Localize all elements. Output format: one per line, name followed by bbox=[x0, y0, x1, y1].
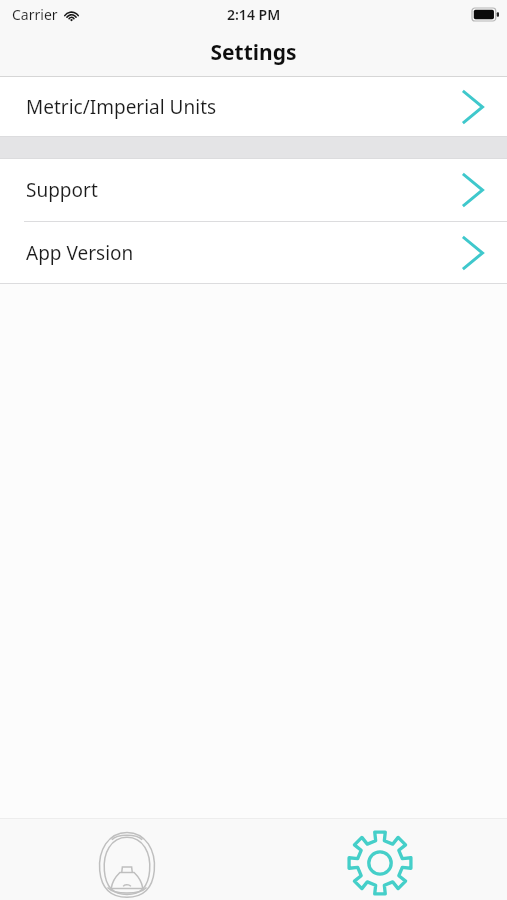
staticText: Carrier bbox=[12, 5, 58, 24]
button[interactable]: App Version bbox=[0, 222, 507, 283]
button[interactable]: Metric/Imperial Units bbox=[0, 77, 507, 136]
button[interactable]: Support bbox=[0, 159, 507, 221]
staticText: Support bbox=[26, 177, 98, 203]
button[interactable]: Settings bbox=[253, 819, 507, 900]
staticText: 2:14 PM bbox=[227, 5, 281, 24]
staticText: Metric/Imperial Units bbox=[26, 94, 217, 120]
staticText: App Version bbox=[26, 240, 134, 266]
staticText: Settings bbox=[210, 38, 297, 67]
button[interactable]: Mask bbox=[0, 819, 253, 900]
